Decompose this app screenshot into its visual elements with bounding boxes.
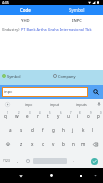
staticText: inpc <box>25 102 33 107</box>
staticText: 7 <box>70 111 72 115</box>
button[interactable]: n <box>68 137 78 151</box>
button[interactable]: inpc <box>15 99 42 109</box>
button[interactable]: r <box>33 109 43 123</box>
staticText: PT Bank Artha Graha Internasional Tbk <box>21 27 92 32</box>
staticText: 1 <box>7 111 9 115</box>
staticText: m <box>81 141 86 147</box>
button[interactable]: u <box>63 109 73 123</box>
staticText: inputs <box>76 102 87 107</box>
staticText: 0 <box>100 111 102 115</box>
staticText: 4:35 <box>2 0 9 5</box>
button[interactable]: Backspace <box>88 137 103 151</box>
button[interactable]: inpc <box>2 87 88 97</box>
staticText: Symbol <box>7 74 21 79</box>
staticText: q <box>4 113 7 119</box>
staticText: 3 <box>29 111 31 115</box>
staticText: ?123 <box>3 159 10 163</box>
staticText: s <box>20 127 23 133</box>
staticText: h <box>62 127 65 133</box>
button[interactable]: Company <box>51 70 103 82</box>
button[interactable]: k <box>78 123 88 137</box>
staticText: . <box>73 158 75 164</box>
button[interactable]: Symbol <box>0 70 51 82</box>
staticText: 9 <box>90 111 92 115</box>
staticText: Code <box>20 7 31 13</box>
button[interactable]: ?123 <box>0 154 13 168</box>
staticText: j <box>72 127 74 133</box>
staticText: z <box>20 141 23 147</box>
button[interactable]: v <box>48 137 58 151</box>
button[interactable]: o <box>83 109 93 123</box>
button[interactable]: d <box>27 123 38 137</box>
staticText: (Industry) <box>2 27 20 32</box>
button[interactable]: t <box>43 109 53 123</box>
button[interactable]: m <box>78 137 88 151</box>
button[interactable]: Emoji <box>23 154 33 168</box>
button[interactable]: s <box>16 123 27 137</box>
button[interactable]: Code <box>0 5 51 15</box>
staticText: 2 <box>18 111 20 115</box>
staticText: 5 <box>49 111 51 115</box>
staticText: t <box>47 113 49 119</box>
button[interactable]: Home <box>36 168 65 183</box>
button[interactable]: q <box>0 109 11 123</box>
staticText: v <box>52 141 55 147</box>
staticText: YHD <box>21 18 30 24</box>
staticText: INPC <box>72 18 82 24</box>
button[interactable]: Search suggestions <box>0 99 15 109</box>
staticText: e <box>26 113 29 119</box>
button[interactable]: input <box>42 99 68 109</box>
staticText: Symbol <box>69 7 85 13</box>
button[interactable]: h <box>58 123 68 137</box>
button[interactable]: w <box>11 109 22 123</box>
button[interactable]: l <box>88 123 98 137</box>
button[interactable]: x <box>27 137 38 151</box>
button[interactable]: Recent apps <box>65 168 94 183</box>
button[interactable]: Search <box>88 85 103 99</box>
button[interactable]: Voice input <box>94 99 103 109</box>
button[interactable]: y <box>53 109 63 123</box>
staticText: p <box>97 113 100 119</box>
staticText: n <box>72 141 75 147</box>
button[interactable]: YHD <box>0 15 51 27</box>
staticText: , <box>17 158 19 164</box>
button[interactable]: Shift <box>0 137 16 151</box>
button[interactable]: Search <box>80 154 103 168</box>
staticText: d <box>31 127 34 133</box>
staticText: y <box>57 113 60 119</box>
button[interactable]: e <box>22 109 33 123</box>
button[interactable]: p <box>93 109 103 123</box>
button[interactable]: inputs <box>68 99 94 109</box>
button[interactable]: g <box>48 123 58 137</box>
button[interactable]: , <box>13 154 23 168</box>
staticText: l <box>92 127 94 133</box>
button[interactable]: i <box>73 109 83 123</box>
staticText: k <box>82 127 85 133</box>
button[interactable]: Switch input method <box>94 168 103 183</box>
staticText: g <box>52 127 55 133</box>
staticText: input <box>50 102 60 107</box>
staticText: c <box>42 141 45 147</box>
staticText: 8 <box>79 111 81 115</box>
staticText: o <box>87 113 90 119</box>
staticText: u <box>67 113 70 119</box>
staticText: 4 <box>39 111 41 115</box>
button[interactable]: c <box>38 137 48 151</box>
staticText: Company <box>58 74 76 79</box>
staticText: a <box>9 127 12 133</box>
button[interactable]: Hide keyboard <box>0 168 36 183</box>
button[interactable]: z <box>16 137 27 151</box>
button[interactable]: j <box>68 123 78 137</box>
button[interactable]: INPC <box>51 15 103 27</box>
button[interactable]: f <box>38 123 48 137</box>
button[interactable]: Symbol <box>51 5 103 15</box>
staticText: b <box>62 141 65 147</box>
staticText: i <box>77 113 79 119</box>
staticText: f <box>42 127 44 133</box>
button[interactable]: a <box>5 123 16 137</box>
staticText: inpc <box>4 89 13 95</box>
staticText: w <box>15 113 19 119</box>
button[interactable]: b <box>58 137 68 151</box>
